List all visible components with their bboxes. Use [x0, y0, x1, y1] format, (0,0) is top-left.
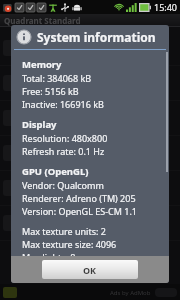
staticText: Free: 5156 kB — [22, 85, 79, 97]
staticText: Version: OpenGL ES-CM 1.1 — [22, 205, 137, 217]
staticText: Renderer: Adreno (TM) 205 — [22, 192, 136, 204]
staticText: Quadrant Standard — [4, 15, 81, 26]
other: Information — [17, 30, 31, 44]
staticText: Total: 384068 kB — [22, 72, 92, 84]
staticText: System information — [37, 29, 156, 45]
staticText: 15:40 — [154, 1, 178, 13]
staticText: Resolution: 480x800 — [22, 132, 108, 144]
button[interactable]: OK — [42, 260, 138, 279]
staticText: OK — [83, 264, 97, 276]
staticText: Max texture size: 4096 — [22, 238, 117, 250]
staticText: GPU (OpenGL) — [22, 165, 89, 178]
staticText: Max texture units: 2 — [22, 225, 106, 237]
staticText: Inactive: 166916 kB — [22, 98, 104, 110]
staticText: Refresh rate: 0.1 Hz — [22, 145, 105, 157]
staticText: Display — [22, 118, 57, 131]
staticText: Memory — [22, 58, 62, 71]
staticText: Ads by AdMob — [110, 289, 151, 297]
staticText: Vendor: Qualcomm — [22, 179, 104, 191]
staticText: Max lights: 8 — [22, 251, 76, 256]
